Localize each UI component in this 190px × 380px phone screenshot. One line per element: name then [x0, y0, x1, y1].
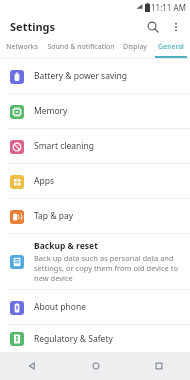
button[interactable]: Display	[118, 39, 152, 58]
staticText: Battery & power saving	[34, 70, 127, 82]
staticText: Tap & pay	[34, 210, 74, 222]
staticText: Smart cleaning	[34, 140, 94, 152]
button[interactable]: Sound & notification	[44, 39, 118, 58]
button[interactable]: Regulatory & Safety	[0, 325, 190, 352]
staticText: Settings	[10, 19, 56, 34]
button[interactable]: Back	[0, 352, 64, 380]
button[interactable]: Apps	[0, 164, 190, 198]
button[interactable]: Smart cleaning	[0, 129, 190, 163]
staticText: 11:11 AM	[151, 2, 186, 13]
staticText: About phone	[34, 301, 87, 313]
button[interactable]: Backup & reset	[0, 234, 190, 289]
staticText: Display	[123, 42, 147, 52]
button[interactable]: General	[152, 39, 190, 58]
staticText: Regulatory & Safety	[34, 333, 113, 345]
button[interactable]: Memory	[0, 94, 190, 128]
staticText: Memory	[34, 105, 68, 117]
staticText: Apps	[34, 175, 54, 187]
staticText: Backup & reset	[34, 240, 98, 252]
button[interactable]: More options	[165, 16, 187, 38]
staticText: General	[158, 42, 184, 52]
button[interactable]: About phone	[0, 290, 190, 324]
button[interactable]: Battery & power saving	[0, 59, 190, 93]
button[interactable]: Home	[64, 352, 127, 380]
button[interactable]: Recent apps	[127, 352, 190, 380]
button[interactable]: Search	[141, 15, 165, 39]
staticText: Back up data such as personal data and s…	[34, 253, 181, 283]
button[interactable]: Networks	[0, 39, 44, 58]
staticText: Sound & notification	[47, 42, 115, 52]
staticText: Networks	[6, 42, 38, 52]
button[interactable]: Tap & pay	[0, 199, 190, 233]
